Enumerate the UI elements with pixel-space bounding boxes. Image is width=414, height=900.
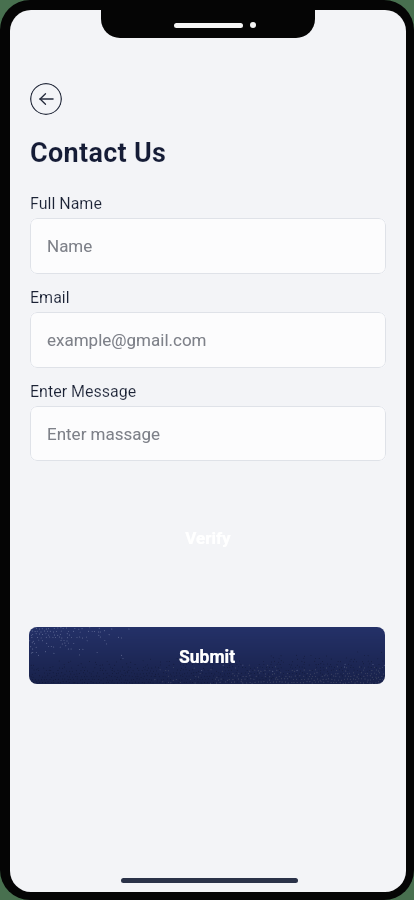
- button[interactable]: Enter massage: [30, 406, 386, 461]
- staticText: Email: [30, 288, 70, 307]
- button[interactable]: Name: [30, 218, 386, 274]
- staticText: Enter massage: [47, 424, 161, 444]
- staticText: example@gmail.com: [47, 330, 207, 350]
- button[interactable]: example@gmail.com: [30, 312, 386, 368]
- button[interactable]: Back: [30, 83, 62, 115]
- staticText: Full Name: [30, 194, 102, 213]
- staticText: Submit: [179, 647, 236, 668]
- button[interactable]: Submit: [29, 627, 385, 684]
- staticText: Contact Us: [30, 137, 167, 169]
- staticText: Enter Message: [30, 382, 137, 401]
- staticText: Name: [47, 236, 93, 256]
